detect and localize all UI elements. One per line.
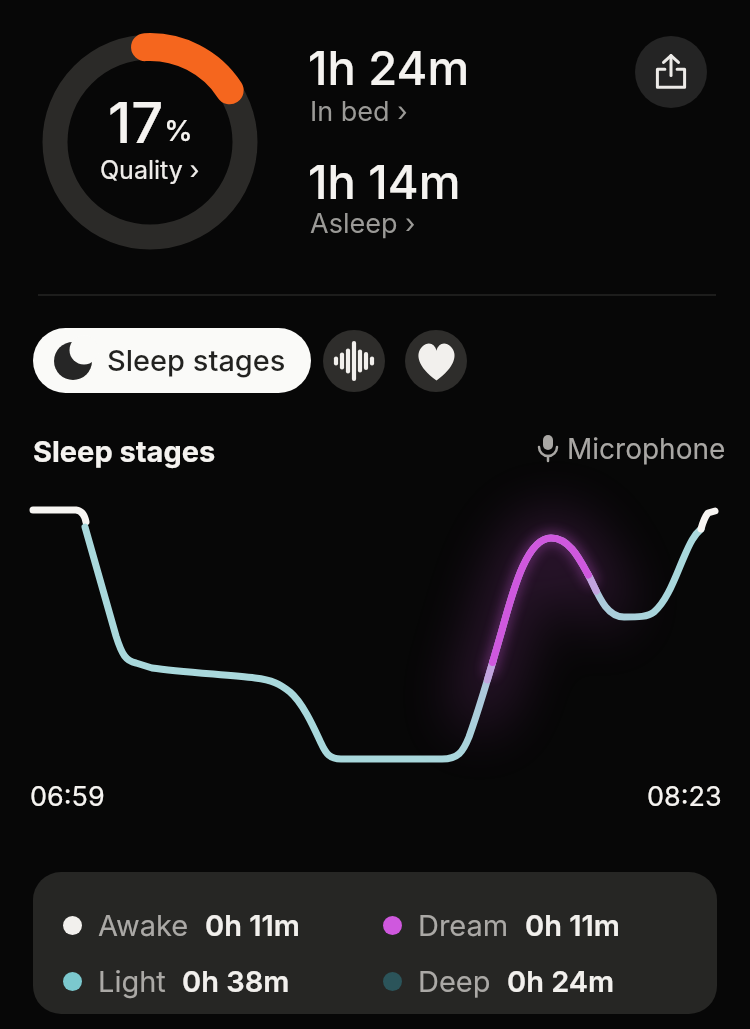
staticText: 0h 11m (525, 908, 620, 943)
staticText: 06:59 (30, 780, 105, 813)
staticText: Quality › (100, 155, 200, 185)
staticText: Deep (418, 964, 491, 999)
staticText: Dream (418, 908, 509, 943)
staticText: 1h 24m (308, 39, 470, 96)
staticText: Sleep stages (33, 434, 216, 469)
button[interactable]: 17 (38, 30, 262, 254)
button[interactable]: Sleep stages (33, 328, 311, 393)
staticText: Awake (98, 908, 189, 943)
staticText: 17 (108, 89, 164, 157)
button[interactable]: Deep (383, 964, 615, 999)
staticText: 1h 14m (308, 153, 461, 210)
button[interactable]: Light (63, 964, 290, 999)
button[interactable] (405, 330, 467, 392)
button[interactable] (635, 36, 707, 108)
staticText: Sleep stages (107, 343, 286, 378)
button[interactable] (323, 330, 385, 392)
staticText: Light (98, 964, 166, 999)
button[interactable]: Awake (63, 908, 300, 943)
staticText: 0h 38m (182, 964, 290, 999)
button[interactable]: Dream (383, 908, 620, 943)
staticText: % (164, 113, 193, 148)
button[interactable]: In bed › (310, 95, 408, 128)
button[interactable]: Microphone (537, 432, 726, 466)
staticText: Microphone (567, 432, 726, 466)
staticText: 0h 24m (507, 964, 615, 999)
staticText: 0h 11m (205, 908, 300, 943)
staticText: 08:23 (647, 780, 722, 813)
button[interactable]: Asleep › (310, 207, 416, 240)
